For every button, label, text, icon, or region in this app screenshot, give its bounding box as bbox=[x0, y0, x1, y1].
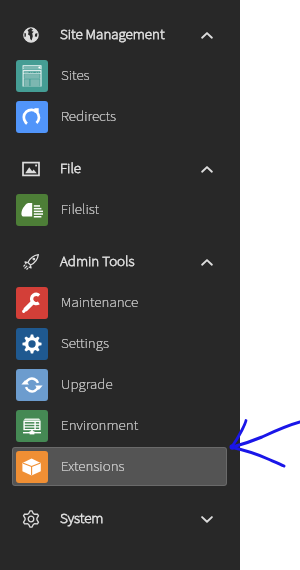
button[interactable]: Redirects bbox=[0, 96, 240, 137]
button[interactable]: System bbox=[0, 498, 240, 539]
button[interactable]: Upgrade bbox=[0, 364, 240, 405]
staticText: Environment bbox=[61, 415, 139, 436]
staticText: System bbox=[60, 508, 104, 529]
button[interactable]: Site Management bbox=[0, 14, 240, 55]
button[interactable]: Maintenance bbox=[0, 282, 240, 323]
other: Site Management bbox=[22, 26, 40, 44]
staticText: Settings bbox=[61, 333, 109, 354]
button[interactable]: Environment bbox=[0, 405, 240, 446]
button[interactable]: Filelist bbox=[0, 189, 240, 230]
staticText: Redirects bbox=[61, 106, 116, 127]
button[interactable]: Sites bbox=[0, 55, 240, 96]
button[interactable]: Settings bbox=[0, 323, 240, 364]
button[interactable]: File bbox=[0, 148, 240, 189]
staticText: Upgrade bbox=[61, 374, 113, 395]
staticText: File bbox=[60, 158, 82, 179]
other: File bbox=[22, 160, 40, 178]
staticText: Sites bbox=[61, 65, 90, 86]
button[interactable]: Extensions bbox=[12, 447, 227, 486]
other: Admin Tools bbox=[22, 253, 40, 271]
staticText: Maintenance bbox=[61, 292, 139, 313]
staticText: Admin Tools bbox=[60, 251, 135, 272]
other: System bbox=[22, 510, 40, 528]
staticText: Extensions bbox=[61, 456, 125, 477]
staticText: Filelist bbox=[61, 199, 100, 220]
button[interactable]: Admin Tools bbox=[0, 241, 240, 282]
staticText: Site Management bbox=[60, 24, 165, 45]
